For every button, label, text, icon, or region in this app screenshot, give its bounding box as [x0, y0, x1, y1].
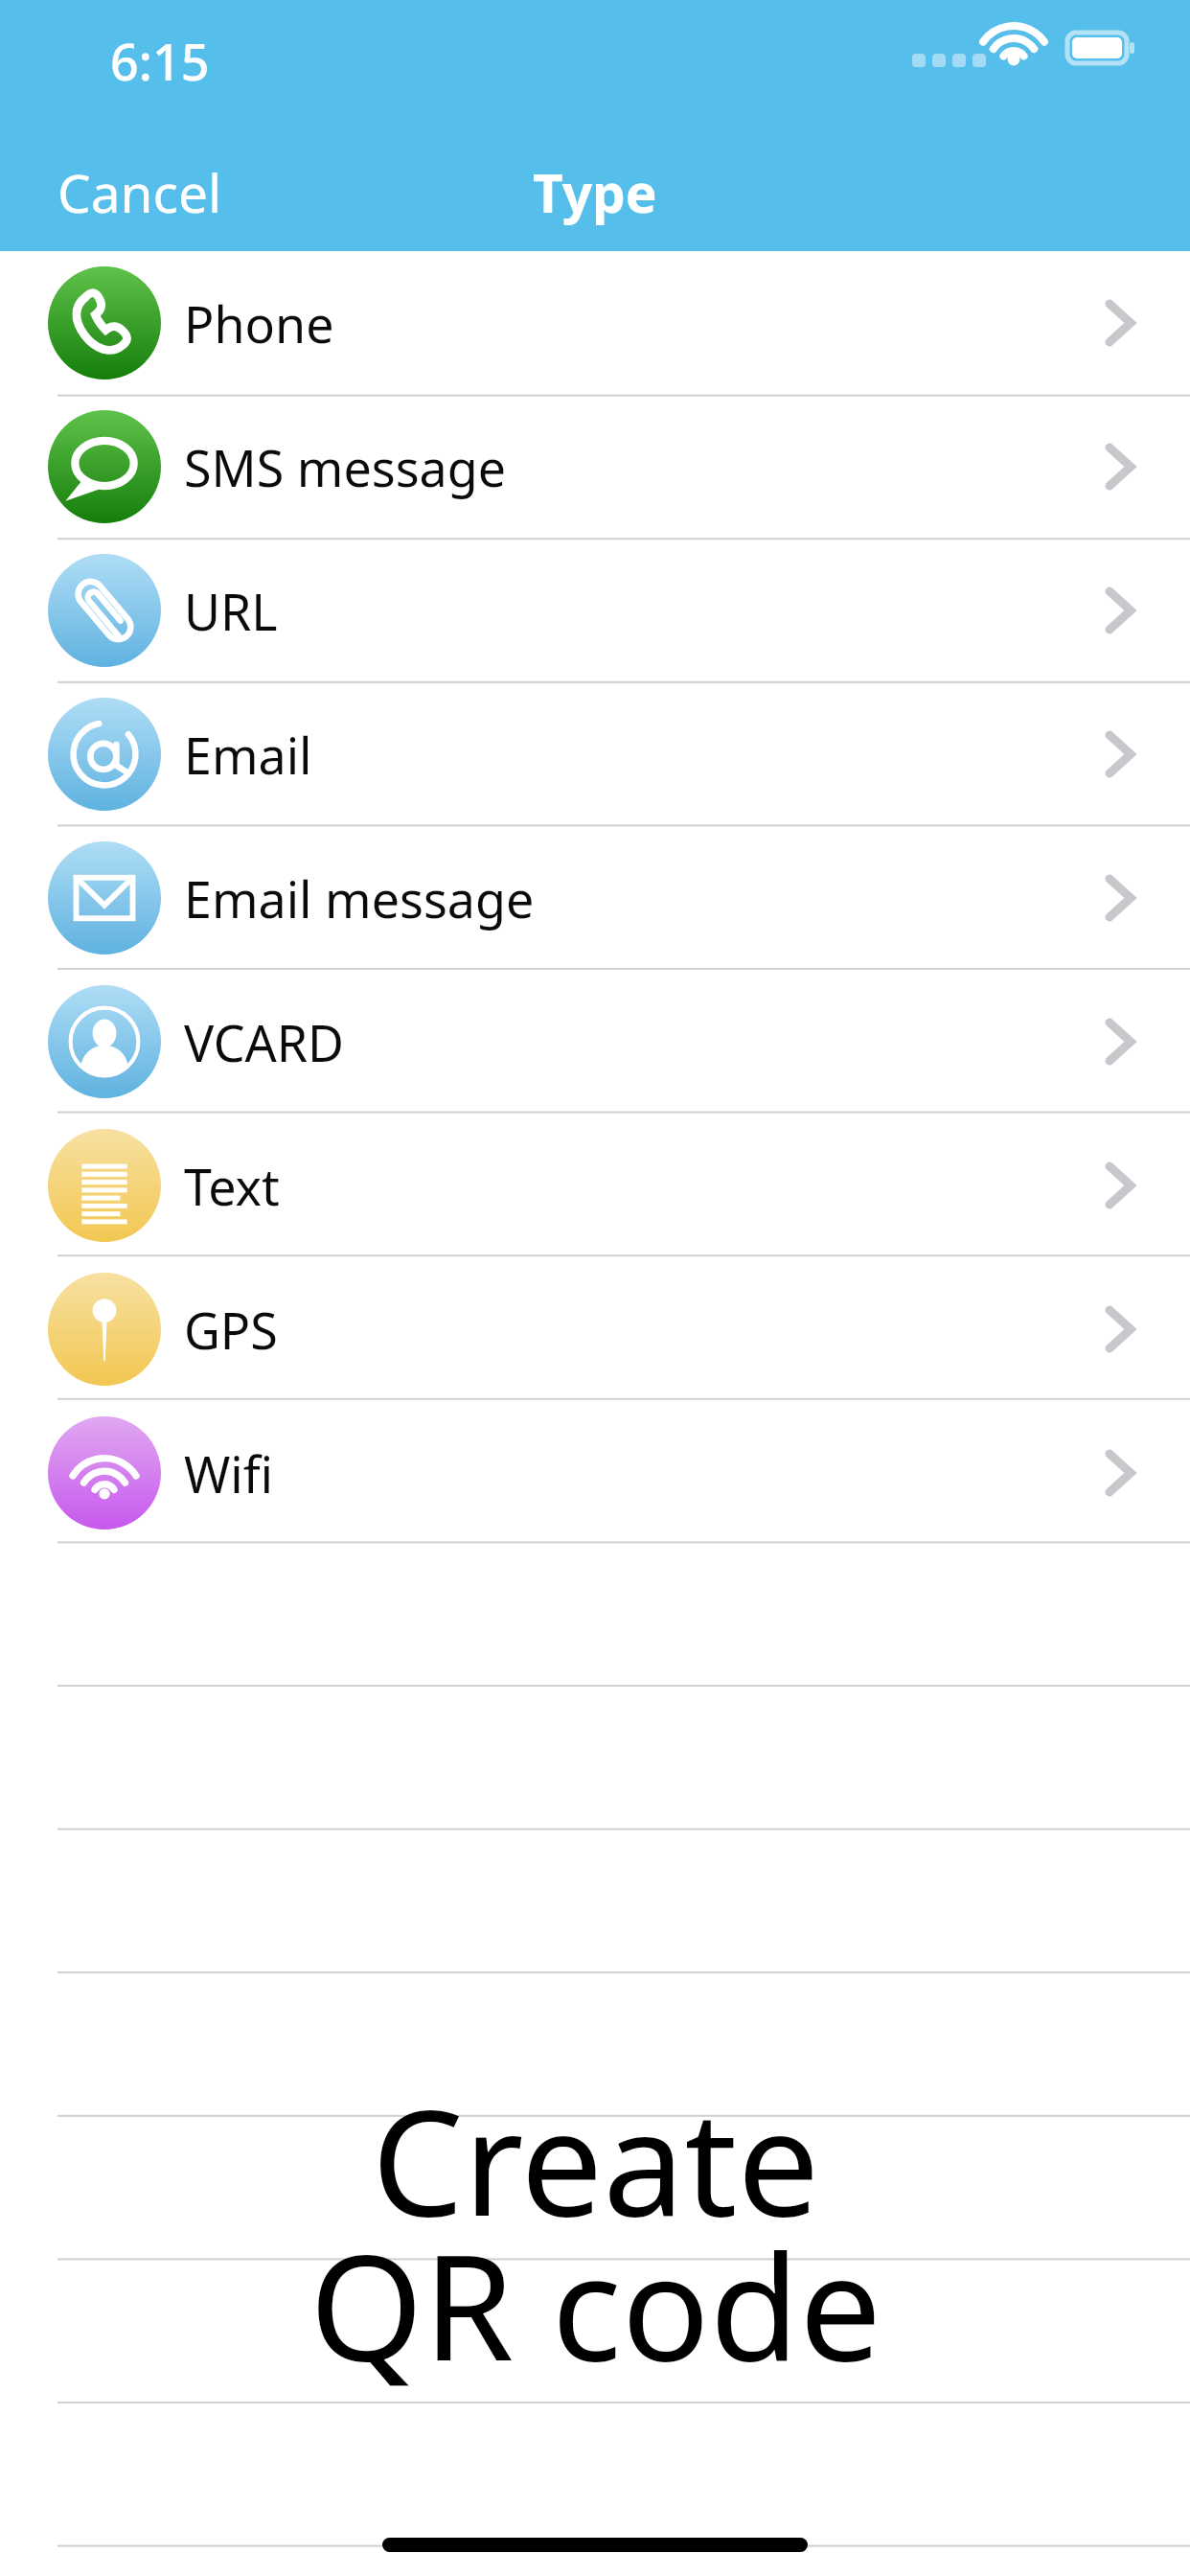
- button[interactable]: Phone: [0, 251, 1190, 395]
- button[interactable]: Email: [0, 682, 1190, 826]
- button[interactable]: Cancel: [29, 143, 251, 241]
- staticText: GPS: [184, 1296, 278, 1364]
- staticText: Create QR code: [309, 2060, 881, 2403]
- staticText: Email: [184, 721, 312, 789]
- staticText: 6:15: [110, 27, 210, 95]
- button[interactable]: VCARD: [0, 970, 1190, 1114]
- button[interactable]: Email message: [0, 826, 1190, 970]
- button[interactable]: SMS message: [0, 395, 1190, 539]
- staticText: Email message: [184, 864, 535, 932]
- staticText: SMS message: [184, 433, 507, 501]
- staticText: Phone: [184, 289, 334, 357]
- button[interactable]: Wifi: [0, 1401, 1190, 1545]
- button[interactable]: Create QR code: [0, 2060, 1190, 2403]
- staticText: VCARD: [184, 1008, 345, 1076]
- staticText: URL: [184, 577, 278, 645]
- staticText: Type: [533, 156, 657, 228]
- button[interactable]: URL: [0, 539, 1190, 682]
- staticText: Cancel: [57, 156, 222, 228]
- button[interactable]: GPS: [0, 1257, 1190, 1401]
- staticText: Wifi: [184, 1439, 274, 1507]
- button[interactable]: Text: [0, 1114, 1190, 1257]
- staticText: Text: [184, 1152, 280, 1220]
